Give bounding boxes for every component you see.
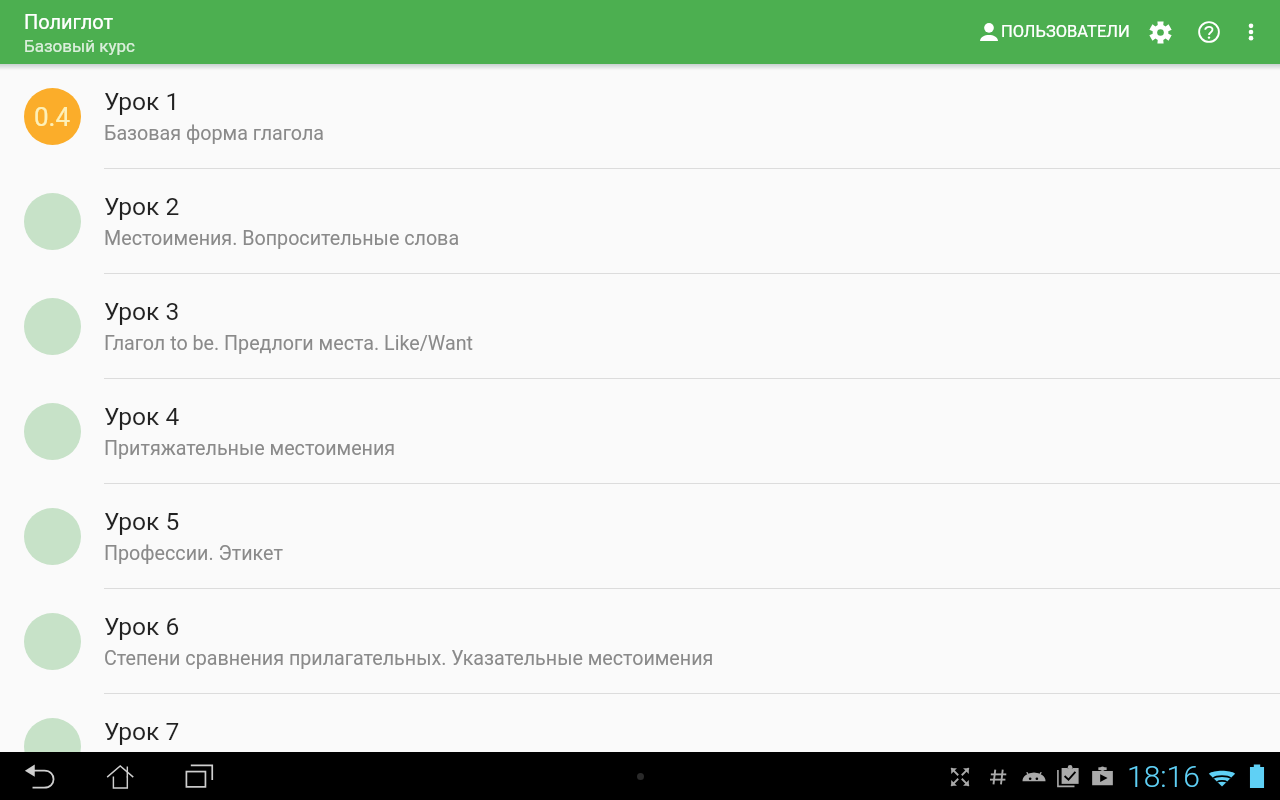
button[interactable]: Урок 3: [0, 274, 1280, 379]
staticText: Базовая форма глагола: [104, 122, 324, 145]
button[interactable]: Recents: [176, 752, 224, 800]
staticText: Базовый курс: [24, 36, 135, 56]
button[interactable]: Home: [96, 752, 144, 800]
button[interactable]: Урок 6: [0, 589, 1280, 694]
staticText: Степени сравнения прилагательных. Указат…: [104, 647, 714, 670]
button[interactable]: Урок 7: [0, 694, 1280, 799]
staticText: Урок 7: [104, 717, 180, 746]
staticText: 18:16: [1127, 759, 1200, 794]
button[interactable]: Help: [1187, 10, 1231, 54]
staticText: Урок 5: [104, 507, 180, 536]
staticText: Полиглот: [24, 10, 114, 33]
staticText: Урок 3: [104, 297, 180, 326]
staticText: Прошедшее время: [104, 752, 279, 775]
staticText: Профессии. Этикет: [104, 542, 283, 565]
staticText: Урок 4: [104, 402, 180, 431]
staticText: Глагол to be. Предлоги места. Like/Want: [104, 332, 473, 355]
staticText: Урок 1: [104, 87, 180, 116]
staticText: Местоимения. Вопросительные слова: [104, 227, 460, 250]
button[interactable]: Урок 4: [0, 379, 1280, 484]
button[interactable]: More options: [1231, 12, 1271, 52]
staticText: ПОЛЬЗОВАТЕЛИ: [1001, 22, 1130, 41]
staticText: Притяжательные местоимения: [104, 437, 396, 460]
staticText: Урок 6: [104, 612, 180, 641]
button[interactable]: Урок 5: [0, 484, 1280, 589]
button[interactable]: Back: [16, 752, 64, 800]
button[interactable]: Settings: [1138, 10, 1182, 54]
staticText: Урок 2: [104, 192, 180, 221]
staticText: 0.4: [34, 102, 71, 132]
button[interactable]: 0.4: [0, 64, 1280, 169]
button[interactable]: ПОЛЬЗОВАТЕЛИ: [968, 12, 1134, 51]
button[interactable]: Урок 2: [0, 169, 1280, 274]
